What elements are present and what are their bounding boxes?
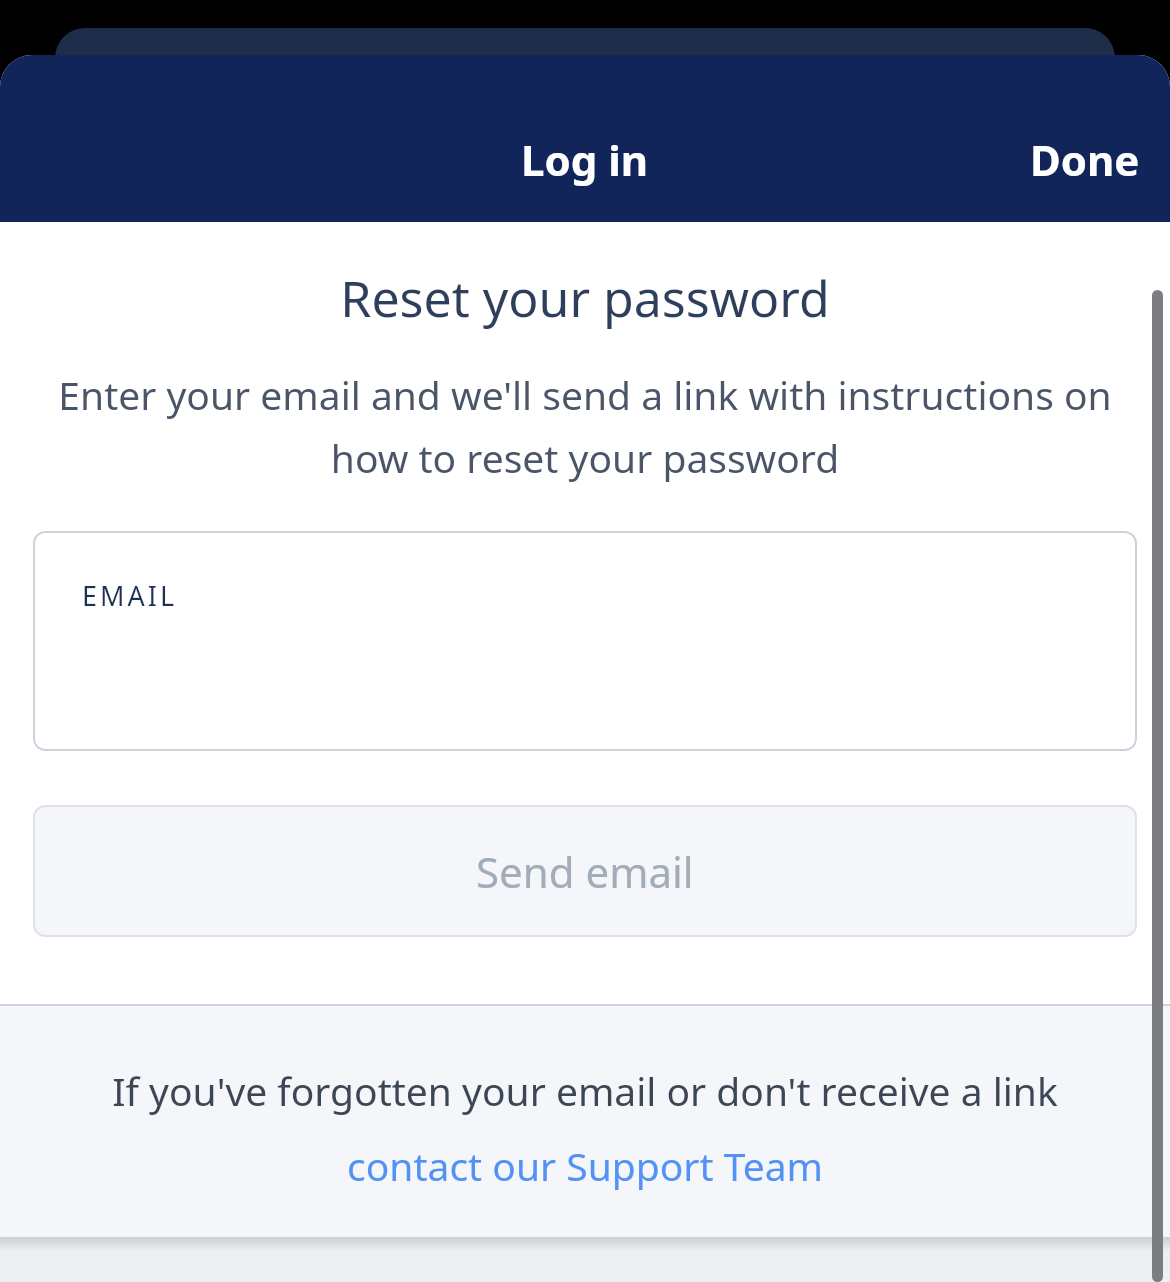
staticText: contact our Support Team: [347, 1139, 823, 1192]
button[interactable]: Done: [1000, 121, 1170, 198]
button[interactable]: Log in: [521, 131, 649, 188]
button[interactable]: EMAIL: [33, 531, 1137, 751]
button[interactable]: Send email: [33, 805, 1137, 937]
staticText: Done: [1030, 131, 1140, 188]
button[interactable]: contact our Support Team: [347, 1139, 823, 1192]
staticText: Enter your email and we'll send a link w…: [36, 368, 1134, 485]
staticText: EMAIL: [82, 577, 178, 614]
staticText: Send email: [476, 843, 694, 900]
staticText: If you've forgotten your email or don't …: [112, 1064, 1058, 1117]
staticText: Reset your password: [340, 264, 830, 332]
